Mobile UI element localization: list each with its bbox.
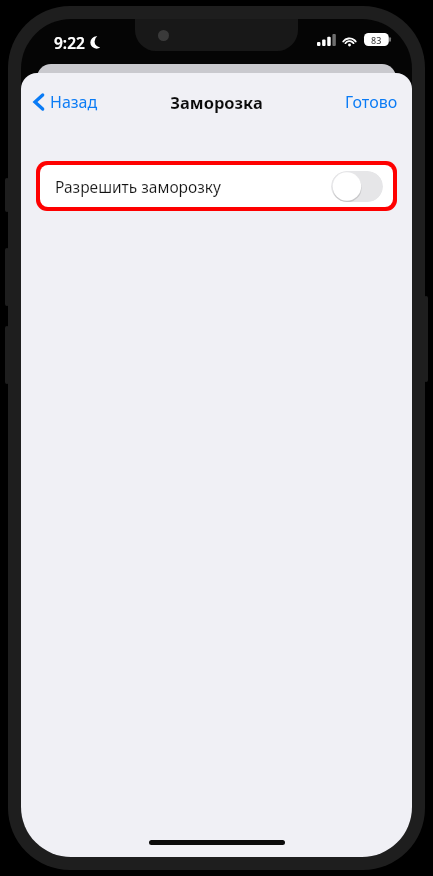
button[interactable]: Разрешить заморозку <box>40 165 393 207</box>
staticText: Разрешить заморозку <box>55 176 221 197</box>
staticText: 9:22 <box>54 32 85 53</box>
staticText: 83 <box>371 34 382 46</box>
button[interactable]: Готово <box>331 87 412 117</box>
staticText: Назад <box>50 91 98 113</box>
staticText: Заморозка <box>170 91 263 113</box>
button[interactable]: Разрешить заморозку <box>331 171 383 202</box>
button[interactable]: Назад <box>21 87 106 117</box>
staticText: Готово <box>345 91 398 113</box>
